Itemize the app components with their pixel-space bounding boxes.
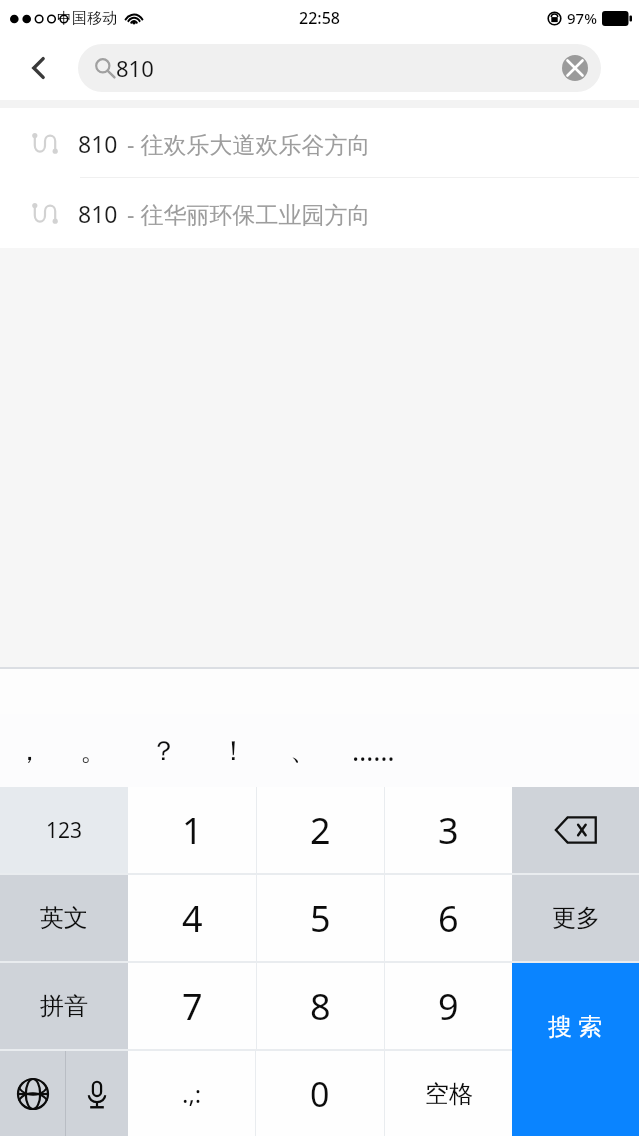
button[interactable]: .,: (128, 1051, 255, 1136)
staticText: …… (352, 732, 395, 769)
button[interactable]: Back (0, 36, 78, 100)
button[interactable]: 810 (0, 108, 639, 178)
button[interactable]: 搜 索 (512, 963, 639, 1136)
button[interactable]: Clear (562, 55, 588, 81)
staticText: 97% (567, 8, 597, 28)
staticText: 英文 (40, 903, 88, 933)
staticText: 0 (310, 1071, 330, 1117)
button[interactable]: Delete (512, 787, 639, 873)
staticText: 更多 (552, 903, 600, 933)
button[interactable]: 0 (256, 1051, 384, 1136)
button[interactable]: 、 (268, 714, 338, 787)
button[interactable]: 7 (128, 963, 256, 1049)
staticText: 1 (182, 806, 203, 855)
staticText: 22:58 (299, 7, 340, 29)
button[interactable]: 1 (128, 787, 256, 873)
staticText: 8 (310, 982, 331, 1031)
button[interactable]: ？ (128, 714, 198, 787)
staticText: 9 (438, 982, 459, 1031)
button[interactable]: 8 (257, 963, 384, 1049)
staticText: 、 (290, 734, 317, 768)
button[interactable]: Voice input (66, 1051, 128, 1136)
staticText: 4 (182, 894, 203, 943)
button[interactable]: …… (338, 714, 408, 787)
button[interactable]: 6 (385, 875, 512, 961)
button[interactable]: 2 (257, 787, 384, 873)
staticText: 3 (438, 806, 459, 855)
staticText: - 往欢乐大道欢乐谷方向 (127, 128, 371, 159)
button[interactable]: 810 (78, 44, 601, 92)
staticText: 空格 (425, 1079, 473, 1109)
staticText: 2 (310, 806, 331, 855)
staticText: ？ (150, 734, 177, 768)
staticText: 搜 索 (548, 1009, 603, 1042)
staticText: 中国移动 (57, 9, 117, 28)
staticText: ！ (220, 734, 247, 768)
button[interactable]: 810 (0, 178, 639, 248)
button[interactable]: 123 (0, 787, 128, 873)
button[interactable]: 更多 (512, 875, 639, 961)
staticText: 123 (46, 816, 83, 845)
button[interactable]: 9 (385, 963, 512, 1049)
button[interactable]: Switch language (0, 1051, 65, 1136)
staticText: 810 (78, 198, 118, 229)
staticText: 拼音 (40, 991, 88, 1021)
staticText: ， (16, 734, 43, 768)
button[interactable]: 5 (257, 875, 384, 961)
staticText: 5 (310, 894, 331, 943)
button[interactable]: ， (0, 714, 58, 787)
button[interactable]: 3 (385, 787, 512, 873)
button[interactable]: 。 (58, 714, 128, 787)
staticText: 6 (438, 894, 459, 943)
staticText: - 往华丽环保工业园方向 (127, 198, 371, 229)
button[interactable]: ！ (198, 714, 268, 787)
button[interactable]: 空格 (385, 1051, 512, 1136)
button[interactable]: 英文 (0, 875, 128, 961)
staticText: .,: (182, 1077, 202, 1110)
staticText: 810 (78, 128, 118, 159)
staticText: 7 (182, 982, 203, 1031)
button[interactable]: 4 (128, 875, 256, 961)
button[interactable]: 拼音 (0, 963, 128, 1049)
staticText: 。 (80, 734, 107, 768)
staticText: 810 (116, 53, 154, 83)
